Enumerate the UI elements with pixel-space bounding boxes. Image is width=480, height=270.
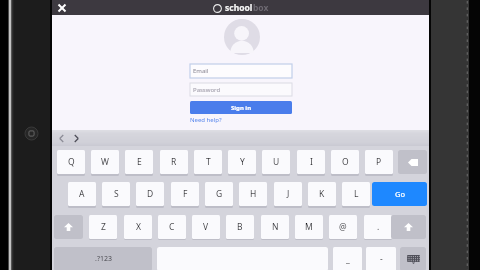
button[interactable]: -	[366, 247, 396, 270]
staticText: D	[147, 188, 154, 200]
button[interactable]: Hide keyboard	[400, 247, 426, 270]
button[interactable]: H	[239, 182, 267, 206]
button[interactable]: Need help?	[190, 116, 222, 124]
button[interactable]: I	[297, 150, 325, 174]
button[interactable]: _	[333, 247, 362, 270]
button[interactable]: Previous field	[54, 130, 68, 146]
button[interactable]: F	[171, 182, 199, 206]
button[interactable]: G	[205, 182, 233, 206]
button[interactable]: Q	[57, 150, 85, 174]
staticText: K	[319, 188, 325, 200]
staticText: U	[273, 156, 280, 168]
staticText: school	[225, 2, 253, 14]
staticText: R	[171, 156, 177, 168]
button[interactable]: Shift	[391, 215, 426, 239]
staticText: F	[183, 188, 188, 200]
button[interactable]: U	[262, 150, 290, 174]
button[interactable]: X	[124, 215, 152, 239]
button[interactable]: Home	[25, 127, 38, 140]
button[interactable]: C	[158, 215, 186, 239]
staticText: S	[114, 188, 119, 200]
staticText: T	[206, 156, 211, 168]
staticText: -	[380, 253, 383, 265]
staticText: .	[377, 221, 380, 233]
button[interactable]: Close	[53, 0, 71, 15]
staticText: Email	[193, 67, 209, 75]
button[interactable]: K	[308, 182, 336, 206]
button[interactable]: E	[125, 150, 153, 174]
staticText: J	[287, 188, 290, 200]
button[interactable]: N	[261, 215, 289, 239]
staticText: Q	[68, 156, 75, 168]
staticText: Y	[240, 156, 245, 168]
staticText: A	[79, 188, 85, 200]
staticText: Password	[193, 86, 221, 94]
staticText: Z	[101, 221, 106, 233]
staticText: E	[137, 156, 142, 168]
staticText: Go	[395, 189, 405, 199]
button[interactable]: Y	[228, 150, 256, 174]
staticText: P	[376, 156, 382, 168]
button[interactable]: Z	[89, 215, 117, 239]
button[interactable]: A	[68, 182, 96, 206]
staticText: Sign in	[231, 104, 252, 112]
staticText: X	[136, 221, 141, 233]
staticText: V	[203, 221, 209, 233]
button[interactable]: O	[331, 150, 359, 174]
staticText: box	[253, 2, 269, 14]
staticText: G	[216, 188, 223, 200]
staticText: @	[339, 221, 347, 233]
button[interactable]: .?123	[54, 247, 152, 270]
button[interactable]: V	[192, 215, 220, 239]
staticText: H	[250, 188, 257, 200]
button[interactable]: .	[364, 215, 392, 239]
staticText: O	[342, 156, 349, 168]
button[interactable]: Go	[372, 182, 427, 206]
staticText: N	[272, 221, 279, 233]
staticText: L	[354, 188, 359, 200]
button[interactable]: Sign in	[190, 101, 292, 114]
staticText: Need help?	[190, 116, 222, 124]
button[interactable]: Password	[190, 83, 292, 96]
button[interactable]: S	[102, 182, 130, 206]
staticText: I	[310, 156, 313, 168]
staticText: W	[101, 156, 109, 168]
button[interactable]: M	[295, 215, 323, 239]
button[interactable]: Next field	[69, 130, 83, 146]
button[interactable]: T	[194, 150, 222, 174]
button[interactable]: D	[136, 182, 164, 206]
button[interactable]: Shift	[54, 215, 83, 239]
button[interactable]: Email	[190, 64, 292, 78]
button[interactable]: B	[226, 215, 254, 239]
button[interactable]: Backspace	[398, 150, 427, 174]
button[interactable]: P	[365, 150, 393, 174]
button[interactable]: W	[91, 150, 119, 174]
button[interactable]: R	[160, 150, 188, 174]
button[interactable]: J	[274, 182, 302, 206]
staticText: _	[346, 253, 350, 265]
staticText: .?123	[95, 254, 112, 264]
staticText: C	[169, 221, 175, 233]
staticText: B	[237, 221, 243, 233]
button[interactable]: L	[342, 182, 370, 206]
staticText: M	[305, 221, 313, 233]
button[interactable]: @	[329, 215, 357, 239]
